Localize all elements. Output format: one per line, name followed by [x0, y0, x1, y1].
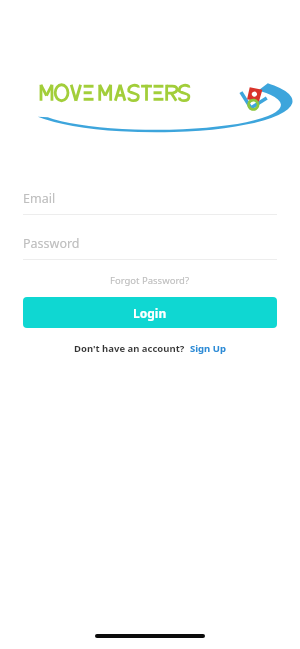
- button[interactable]: Password: [23, 232, 277, 260]
- button[interactable]: Login: [23, 297, 277, 328]
- button[interactable]: Email: [23, 187, 277, 215]
- button[interactable]: Sign Up: [189, 340, 227, 357]
- staticText: Sign Up: [190, 342, 226, 355]
- staticText: Don't have an account?: [74, 342, 185, 355]
- button[interactable]: Forgot Password?: [104, 271, 196, 290]
- staticText: Password: [23, 235, 80, 252]
- staticText: Forgot Password?: [110, 274, 190, 287]
- staticText: Login: [133, 305, 167, 321]
- staticText: Email: [23, 190, 56, 207]
